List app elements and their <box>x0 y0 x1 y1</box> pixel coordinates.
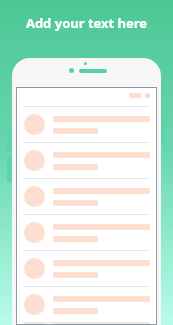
button[interactable] <box>17 178 156 214</box>
staticText: Add your text here <box>0 14 173 32</box>
button[interactable] <box>17 322 156 324</box>
button[interactable] <box>17 142 156 178</box>
button[interactable] <box>17 106 156 142</box>
button[interactable] <box>17 286 156 322</box>
button[interactable] <box>17 214 156 250</box>
button[interactable] <box>17 250 156 286</box>
